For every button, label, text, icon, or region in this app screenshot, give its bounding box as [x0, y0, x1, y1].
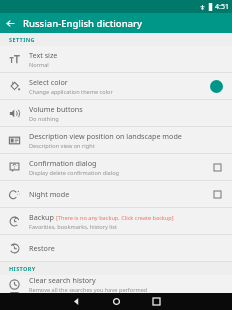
- staticText: Change application theme color: [29, 88, 113, 96]
- staticText: [There is no any backup. Click create ba…: [56, 214, 174, 222]
- button[interactable]: Description view position on landscape m…: [0, 127, 232, 153]
- staticText: Backup: [29, 212, 56, 222]
- button[interactable]: Clear search history: [0, 275, 232, 293]
- staticText: 4:51: [215, 2, 229, 12]
- staticText: Volume buttons: [29, 104, 83, 114]
- button[interactable]: Toggle: [209, 186, 225, 202]
- button[interactable]: Select color: [207, 77, 225, 95]
- button[interactable]: Home: [96, 293, 136, 310]
- staticText: HISTORY: [9, 265, 36, 272]
- button[interactable]: Select color: [0, 73, 232, 99]
- staticText: Text size: [29, 50, 58, 60]
- button[interactable]: Backup: [0, 208, 232, 234]
- button[interactable]: Back: [0, 13, 20, 33]
- button[interactable]: Night mode: [0, 181, 232, 207]
- button[interactable]: Toggle: [209, 159, 225, 175]
- staticText: SETTING: [9, 36, 35, 43]
- button[interactable]: Volume buttons: [0, 100, 232, 126]
- button[interactable]: Recents: [136, 293, 176, 310]
- staticText: Description view on right: [29, 142, 95, 150]
- staticText: Favorities, bookmarks, history list: [29, 223, 117, 231]
- staticText: Night mode: [29, 189, 70, 199]
- staticText: Clear search history: [29, 275, 96, 285]
- staticText: Description view position on landscape m…: [29, 131, 182, 141]
- button[interactable]: Text size: [0, 46, 232, 72]
- staticText: Remove all the searches you have perform…: [29, 286, 148, 293]
- staticText: Normal: [29, 61, 49, 69]
- staticText: Russian-English dictionary: [23, 17, 143, 30]
- staticText: Select color: [29, 77, 68, 87]
- button[interactable]: Confirmation dialog: [0, 154, 232, 180]
- button[interactable]: Restore: [0, 235, 232, 261]
- button[interactable]: Back: [56, 293, 96, 310]
- staticText: Restore: [29, 243, 55, 253]
- staticText: Do nothing: [29, 115, 59, 123]
- staticText: Display delete confirmation dialog: [29, 169, 119, 177]
- staticText: Confirmation dialog: [29, 158, 97, 168]
